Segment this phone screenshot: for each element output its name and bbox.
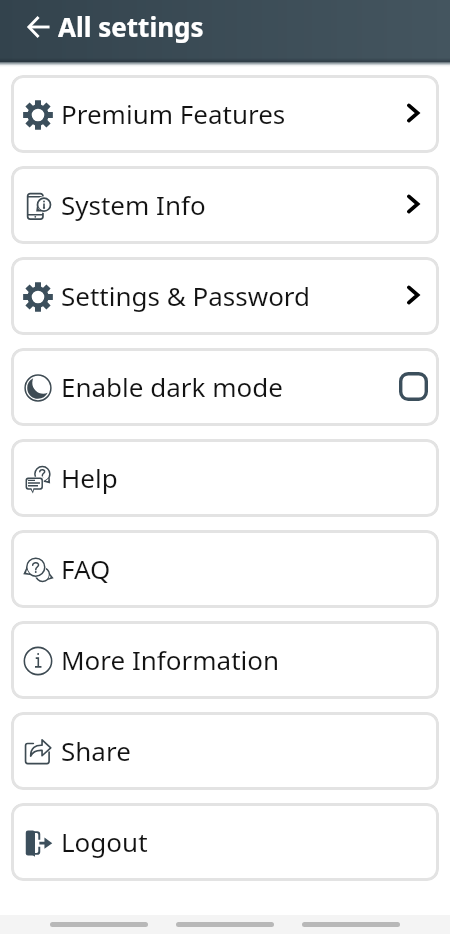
staticText: Premium Features xyxy=(61,96,286,131)
button[interactable]: Enable dark mode xyxy=(11,348,439,426)
button[interactable]: Logout xyxy=(11,803,439,881)
button[interactable]: Nav 1 xyxy=(176,922,274,927)
staticText: All settings xyxy=(58,9,204,44)
button[interactable]: More Information xyxy=(11,621,439,699)
button[interactable]: Settings & Password xyxy=(11,257,439,335)
button[interactable]: FAQ xyxy=(11,530,439,608)
staticText: System Info xyxy=(61,187,206,222)
staticText: Share xyxy=(61,733,131,768)
button[interactable]: Share xyxy=(11,712,439,790)
staticText: Settings & Password xyxy=(61,278,311,313)
staticText: Enable dark mode xyxy=(61,369,283,404)
staticText: More Information xyxy=(61,642,280,677)
button[interactable]: Nav 2 xyxy=(302,922,400,927)
button[interactable]: Nav 0 xyxy=(50,922,148,927)
staticText: Help xyxy=(61,460,118,495)
button[interactable]: System Info xyxy=(11,166,439,244)
button[interactable]: Back xyxy=(23,11,55,43)
staticText: FAQ xyxy=(61,551,111,586)
button[interactable]: Help xyxy=(11,439,439,517)
button[interactable]: Premium Features xyxy=(11,75,439,153)
staticText: Logout xyxy=(61,824,148,859)
